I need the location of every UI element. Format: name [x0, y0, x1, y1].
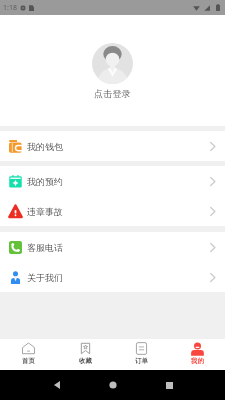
button[interactable]: 订单 [113, 339, 169, 370]
staticText: 我的钱包 [27, 141, 63, 152]
button[interactable]: Recents [141, 370, 197, 400]
staticText: 点击登录 [94, 88, 131, 100]
staticText: 订单 [135, 357, 148, 365]
staticText: 1:18 [3, 3, 17, 13]
staticText: 关于我们 [27, 272, 63, 283]
staticText: 客服电话 [27, 242, 63, 253]
staticText: 我的预约 [27, 176, 63, 187]
button[interactable]: 我的预约 [0, 166, 225, 196]
button[interactable]: 客服电话 [0, 232, 225, 262]
button[interactable]: Back [29, 370, 85, 400]
button[interactable]: 收藏 [57, 339, 113, 370]
staticText: 我的 [191, 357, 204, 365]
button[interactable]: 首页 [0, 339, 57, 370]
button[interactable]: Home [85, 370, 141, 400]
staticText: 首页 [22, 357, 35, 365]
button[interactable]: 违章事故 [0, 196, 225, 226]
button[interactable]: 我的 [169, 339, 225, 370]
button[interactable]: Avatar [92, 43, 133, 84]
button[interactable]: 我的钱包 [0, 131, 225, 161]
button[interactable]: 关于我们 [0, 262, 225, 292]
staticText: 收藏 [79, 357, 92, 365]
staticText: 违章事故 [27, 206, 63, 217]
